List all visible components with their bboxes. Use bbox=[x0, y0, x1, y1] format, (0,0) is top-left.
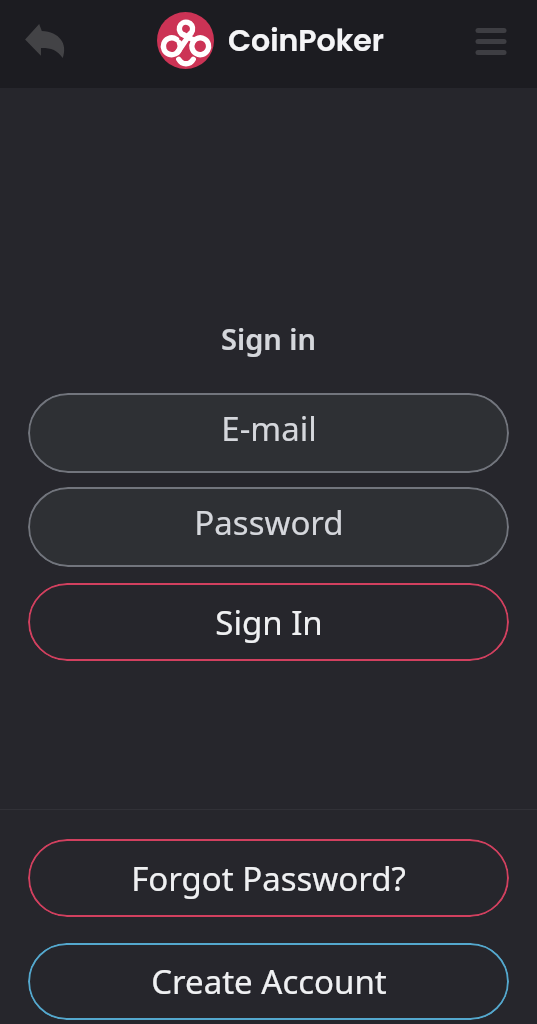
button[interactable]: Password bbox=[28, 487, 509, 567]
staticText: Password bbox=[194, 500, 344, 545]
staticText: Sign In bbox=[215, 600, 323, 645]
button[interactable]: Forgot Password? bbox=[28, 839, 509, 917]
staticText: Create Account bbox=[151, 959, 387, 1004]
staticText: CoinPoker bbox=[228, 20, 384, 62]
button[interactable]: Sign In bbox=[28, 583, 509, 661]
button[interactable]: Create Account bbox=[28, 943, 509, 1020]
button[interactable]: Menu bbox=[467, 18, 515, 64]
button[interactable]: E-mail bbox=[28, 393, 509, 473]
staticText: Forgot Password? bbox=[131, 856, 406, 901]
button[interactable]: Back bbox=[17, 14, 75, 67]
staticText: Sign in bbox=[221, 319, 317, 358]
staticText: E-mail bbox=[221, 406, 317, 451]
